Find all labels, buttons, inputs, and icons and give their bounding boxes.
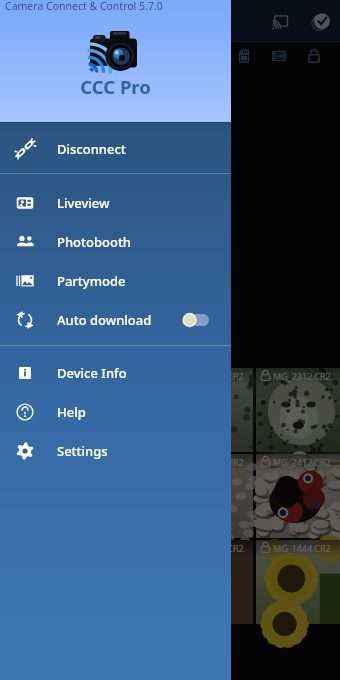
button[interactable]: Select all xyxy=(307,8,334,35)
staticText: Partymode xyxy=(57,272,126,290)
button[interactable]: Auto download xyxy=(0,300,231,339)
staticText: MG_1444.CR2 xyxy=(273,542,331,554)
button[interactable]: MG_2312.CR2 xyxy=(256,368,340,452)
staticText: Photobooth xyxy=(57,233,132,251)
button[interactable]: MG_2312.CR2 xyxy=(169,368,253,452)
staticText: CCC Pro xyxy=(0,74,231,99)
button[interactable]: Photobooth xyxy=(0,222,231,261)
staticText: Disconnect xyxy=(57,140,126,158)
button[interactable]: Cast xyxy=(266,8,293,35)
staticText: Auto download xyxy=(57,311,152,329)
staticText: MG_2412.CR2 xyxy=(186,456,244,468)
button[interactable]: SD card xyxy=(229,41,258,70)
button[interactable]: MG_1444.CR2 xyxy=(169,540,253,624)
button[interactable]: Help xyxy=(0,392,231,431)
staticText: MG_2312.CR2 xyxy=(273,370,331,382)
staticText: Settings xyxy=(57,442,108,460)
staticText: MG_1444.CR2 xyxy=(186,542,244,554)
button[interactable]: Liveview xyxy=(0,174,231,222)
staticText: Help xyxy=(57,403,86,421)
staticText: Camera Connect & Control 5.7.0 xyxy=(5,0,163,13)
staticText: MG_2412.CR2 xyxy=(273,456,331,468)
button[interactable]: Partymode xyxy=(0,261,231,300)
button[interactable]: Device Info xyxy=(0,346,231,392)
staticText: MG_2312.CR2 xyxy=(186,370,244,382)
button[interactable]: MG_2412.CR2 xyxy=(256,454,340,538)
button[interactable]: Settings xyxy=(0,431,231,470)
button[interactable]: Disconnect xyxy=(0,124,231,173)
staticText: Liveview xyxy=(57,194,110,212)
staticText: Device Info xyxy=(57,364,127,382)
button[interactable]: Protected xyxy=(299,41,328,70)
button[interactable]: MG_2412.CR2 xyxy=(169,454,253,538)
button[interactable]: MG_1444.CR2 xyxy=(256,540,340,624)
button[interactable]: Movies xyxy=(264,41,293,70)
